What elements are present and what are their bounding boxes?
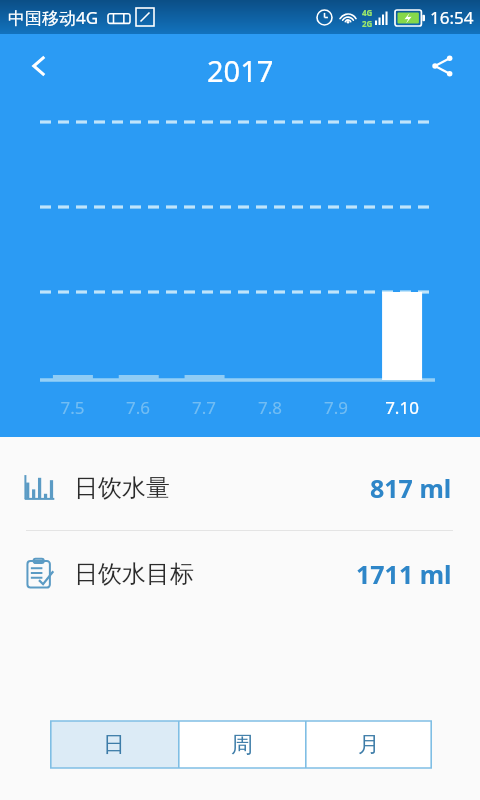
button[interactable]: Share bbox=[416, 40, 468, 92]
button[interactable]: Back bbox=[14, 40, 66, 92]
staticText: 4G bbox=[362, 7, 373, 18]
button[interactable]: 月 bbox=[305, 721, 432, 768]
staticText: 7.9 bbox=[303, 396, 369, 419]
staticText: 7.7 bbox=[171, 396, 237, 419]
staticText: 7.5 bbox=[40, 396, 105, 419]
button[interactable]: 周 bbox=[178, 721, 305, 768]
staticText: 日 bbox=[103, 731, 125, 759]
button[interactable]: 日 bbox=[50, 721, 178, 768]
staticText: 2G bbox=[362, 18, 373, 29]
staticText: 1711 ml bbox=[356, 557, 452, 591]
staticText: 周 bbox=[231, 731, 253, 759]
staticText: 817 ml bbox=[370, 471, 452, 505]
staticText: 日饮水目标 bbox=[74, 559, 194, 589]
staticText: 7.10 bbox=[369, 396, 435, 419]
staticText: 7.8 bbox=[237, 396, 303, 419]
staticText: 中国移动4G bbox=[8, 6, 99, 29]
button[interactable]: 日饮水量 bbox=[0, 445, 480, 530]
staticText: 月 bbox=[358, 731, 380, 759]
button[interactable]: 日饮水目标 bbox=[0, 531, 480, 616]
staticText: 16:54 bbox=[430, 6, 474, 29]
staticText: 7.6 bbox=[105, 396, 171, 419]
staticText: 2017 bbox=[207, 51, 274, 90]
staticText: 日饮水量 bbox=[74, 473, 170, 503]
